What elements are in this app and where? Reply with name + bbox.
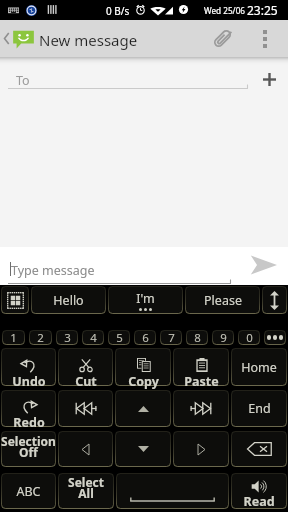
staticText: To	[16, 72, 30, 89]
button[interactable]: 2	[29, 330, 52, 345]
button[interactable]: 3	[56, 330, 78, 345]
staticText: Wed 25/06	[204, 5, 246, 16]
button[interactable]: Redo	[1, 390, 56, 427]
staticText: Undo	[12, 373, 46, 390]
button[interactable]: Hello	[31, 286, 106, 314]
button[interactable]: Read	[231, 473, 287, 509]
staticText: 0	[246, 330, 253, 345]
button[interactable]: 6	[134, 330, 156, 345]
button[interactable]: More options	[252, 20, 278, 57]
button[interactable]: Backspace	[231, 431, 287, 467]
button[interactable]: Space	[116, 473, 229, 509]
button[interactable]: End	[231, 390, 287, 427]
staticText: 3	[64, 330, 71, 345]
button[interactable]: 8	[186, 330, 208, 345]
staticText: Copy	[128, 373, 159, 390]
staticText: Cut	[75, 373, 97, 390]
button[interactable]: Copy	[115, 348, 171, 386]
button[interactable]: Move left	[58, 431, 113, 467]
button[interactable]: Keyboard settings	[1, 286, 29, 314]
button[interactable]: Select All	[58, 473, 114, 509]
staticText: 8	[194, 330, 201, 345]
button[interactable]: Selection Off	[1, 431, 56, 467]
button[interactable]: Type message	[0, 247, 238, 285]
staticText: 0 B/s	[106, 4, 130, 18]
staticText: 23:25	[247, 2, 278, 18]
button[interactable]: I'm	[108, 286, 183, 314]
button[interactable]: Move up	[115, 390, 171, 427]
staticText: Type message	[11, 262, 95, 279]
button[interactable]: Add recipient	[250, 72, 288, 110]
button[interactable]: Resize keyboard	[262, 286, 287, 314]
button[interactable]: Navigate up	[0, 20, 38, 57]
button[interactable]: ABC	[1, 473, 56, 509]
button[interactable]: Paste	[173, 348, 229, 386]
button[interactable]: Cut	[58, 348, 113, 386]
staticText: 2	[37, 330, 44, 345]
staticText: Please	[204, 292, 242, 309]
staticText: New message	[39, 30, 138, 50]
staticText: 1	[10, 330, 17, 345]
staticText: 5	[116, 330, 123, 345]
staticText: Paste	[184, 373, 219, 390]
button[interactable]: Move to next word	[173, 390, 229, 427]
staticText: Home	[241, 359, 277, 376]
staticText: ABC	[16, 483, 41, 500]
staticText: Read	[243, 493, 275, 510]
button[interactable]: Home	[231, 348, 287, 386]
button[interactable]: 5	[108, 330, 130, 345]
button[interactable]: Send message	[238, 247, 288, 285]
button[interactable]: Move down	[115, 431, 171, 467]
staticText: 4	[90, 330, 97, 345]
button[interactable]: Attach	[202, 20, 242, 57]
button[interactable]: To	[0, 72, 250, 110]
button[interactable]: 7	[160, 330, 182, 345]
staticText: 9	[220, 330, 227, 345]
button[interactable]: More symbols	[264, 330, 286, 345]
button[interactable]: 9	[212, 330, 234, 345]
button[interactable]: Please	[185, 286, 260, 314]
staticText: End	[248, 400, 271, 417]
staticText: Redo	[13, 414, 45, 431]
staticText: I'm	[136, 290, 155, 307]
button[interactable]: 0	[238, 330, 260, 345]
button[interactable]: Undo	[1, 348, 56, 386]
staticText: Select All	[68, 474, 104, 502]
staticText: Hello	[53, 292, 84, 309]
staticText: 6	[142, 330, 149, 345]
button[interactable]: Move right	[173, 431, 229, 467]
button[interactable]: Move to previous word	[58, 390, 113, 427]
button[interactable]: 1	[2, 330, 25, 345]
staticText: Selection Off	[1, 433, 56, 461]
staticText: 7	[168, 330, 175, 345]
button[interactable]: 4	[82, 330, 104, 345]
